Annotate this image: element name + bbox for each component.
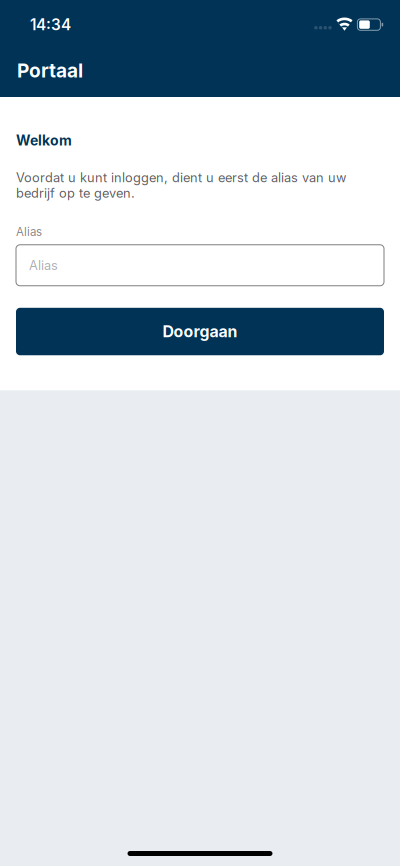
staticText: Doorgaan	[162, 322, 237, 341]
staticText: Portaal	[17, 59, 83, 82]
button[interactable]: Doorgaan	[16, 308, 384, 355]
staticText: Alias	[29, 257, 58, 273]
staticText: Voordat u kunt inloggen, dient u eerst d…	[16, 170, 346, 201]
staticText: Alias	[16, 225, 42, 239]
staticText: 14:34	[30, 15, 71, 34]
button[interactable]: Alias	[16, 245, 384, 286]
staticText: Welkom	[16, 132, 72, 149]
